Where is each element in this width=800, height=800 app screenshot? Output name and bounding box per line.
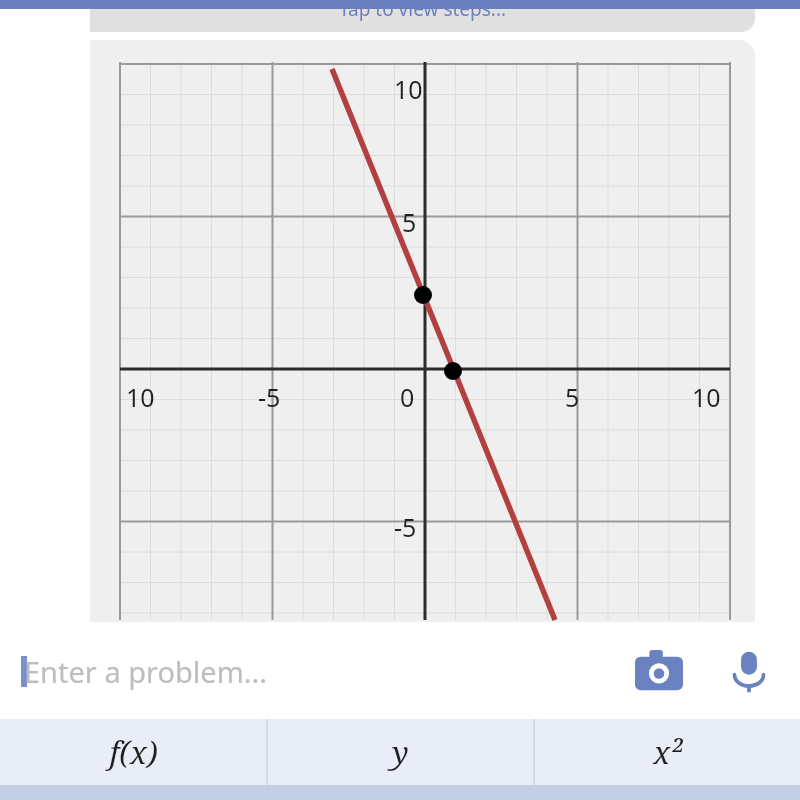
staticText: -5: [258, 380, 281, 414]
staticText: 10: [394, 72, 423, 106]
button[interactable]: y: [268, 719, 533, 785]
button[interactable]: Enter a problem...: [0, 624, 800, 719]
staticText: 5: [565, 380, 580, 414]
staticText: 10: [692, 380, 721, 414]
staticText: 0: [400, 380, 415, 414]
button[interactable]: x²: [535, 719, 800, 785]
button[interactable]: Camera input: [628, 641, 690, 703]
staticText: f(x): [109, 731, 158, 773]
button[interactable]: Tap to view steps...: [90, 0, 755, 32]
staticText: Tap to view steps...: [339, 0, 507, 22]
staticText: Enter a problem...: [24, 652, 268, 691]
staticText: 10: [126, 380, 155, 414]
staticText: x²: [653, 731, 683, 773]
staticText: -5: [394, 510, 417, 544]
button[interactable]: f(x): [0, 719, 266, 785]
button[interactable]: Voice input: [718, 641, 780, 703]
staticText: y: [392, 731, 409, 773]
staticText: 5: [402, 205, 417, 239]
